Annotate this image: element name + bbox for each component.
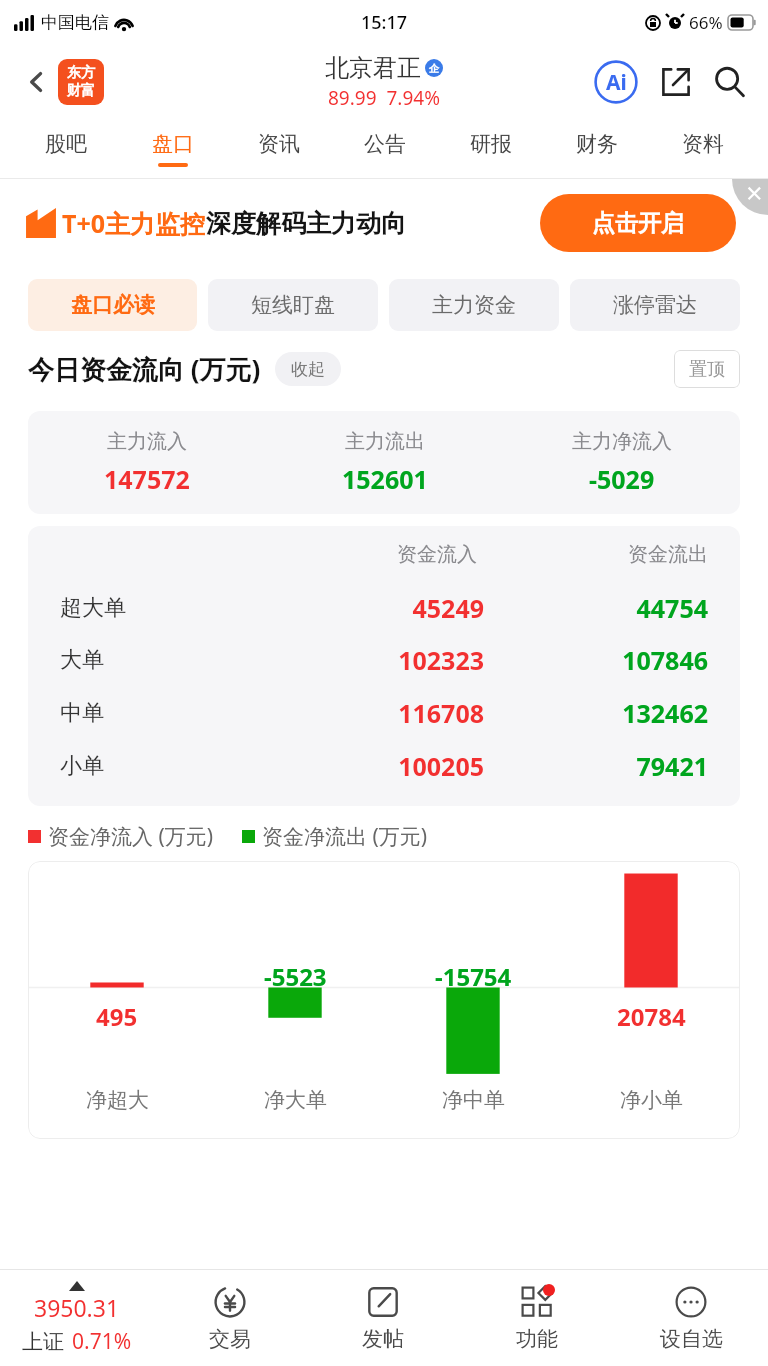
staticText: 净小单 [620,1087,683,1113]
staticText: 主力流出 [345,429,425,454]
button[interactable]: 涨停雷达 [570,279,740,331]
staticText: 中单 [60,699,272,727]
button[interactable]: 点击开启 [540,194,736,252]
staticText: 20784 [617,1000,686,1033]
staticText: 涨停雷达 [613,292,697,318]
button[interactable]: 资料 [650,120,756,178]
staticText: 79421 [496,749,708,783]
staticText: 152601 [342,462,428,496]
staticText: 45249 [272,591,484,625]
staticText: 44754 [496,591,708,625]
button[interactable]: Share [654,60,698,104]
staticText: 3950.31 [34,1292,120,1323]
staticText: 设自选 [660,1326,723,1352]
button[interactable]: 股吧 [12,120,119,178]
staticText: 超大单 [60,594,272,622]
button[interactable]: 公告 [332,120,438,178]
staticText: 495 [96,1000,138,1033]
button[interactable]: 3950.31 [0,1270,153,1366]
button[interactable]: 主力资金 [389,279,559,331]
button[interactable]: 主力流入 [28,411,740,514]
staticText: 资讯 [258,131,300,157]
staticText: 主力流入 [107,429,187,454]
button[interactable]: 研报 [438,120,544,178]
staticText: 北京君正 [325,53,421,83]
staticText: 点击开启 [592,209,684,238]
staticText: 股吧 [45,131,87,157]
staticText: 大单 [60,646,272,674]
button[interactable]: 收起 [275,352,341,386]
staticText: 上证 [22,1329,64,1355]
staticText: 116708 [272,696,484,730]
staticText: 盘口必读 [71,292,155,318]
staticText: 短线盯盘 [251,292,335,318]
staticText: 100205 [272,749,484,783]
staticText: 研报 [470,131,512,157]
staticText: 89.99 7.94% [328,85,440,111]
staticText: 132462 [496,696,708,730]
staticText: -5029 [589,462,655,496]
staticText: 主力资金 [432,292,516,318]
button[interactable]: 置顶 [674,350,740,388]
button[interactable]: Back [18,63,56,101]
staticText: 资金流入 [258,542,477,567]
button[interactable]: 盘口 [119,120,226,178]
staticText: 102323 [272,643,484,677]
staticText: 66% [689,11,723,34]
button[interactable]: 495 [28,861,740,1139]
staticText: 财富 [67,82,95,100]
button[interactable]: 设自选 [614,1270,768,1366]
staticText: 147572 [104,462,190,496]
staticText: 东方 [67,64,95,82]
staticText: 交易 [209,1326,251,1352]
staticText: 公告 [364,131,406,157]
staticText: 资料 [682,131,724,157]
button[interactable]: Search [708,60,752,104]
staticText: 资金净流出 (万元) [262,822,428,851]
staticText: 置顶 [689,358,725,381]
button[interactable]: East Money [58,59,104,105]
staticText: 0.71% [72,1327,132,1356]
staticText: -5523 [264,960,327,993]
staticText: 收起 [291,359,325,380]
staticText: 净超大 [86,1087,149,1113]
staticText: Ai [606,68,627,97]
staticText: 发帖 [362,1326,404,1352]
button[interactable]: AI [592,58,640,106]
staticText: 小单 [60,752,272,780]
staticText: 净中单 [442,1087,505,1113]
staticText: 中国电信 [41,12,109,33]
staticText: 功能 [516,1326,558,1352]
staticText: 15:17 [361,10,408,35]
staticText: 107846 [496,643,708,677]
staticText: 财务 [576,131,618,157]
button[interactable]: 发帖 [306,1270,460,1366]
button[interactable]: Close ad [732,179,768,215]
button[interactable]: 资金流入 [28,526,740,806]
staticText: 资金净流入 (万元) [48,822,214,851]
staticText: 主力净流入 [572,429,672,454]
staticText: 净大单 [264,1087,327,1113]
button[interactable]: 财务 [544,120,650,178]
staticText: T+0主力监控 [62,206,206,240]
button[interactable]: 功能 [460,1270,614,1366]
staticText: 深度解码主力动向 [206,208,406,239]
button[interactable]: 资讯 [226,120,332,178]
button[interactable]: 盘口必读 [28,279,197,331]
staticText: -15754 [435,960,512,993]
staticText: 盘口 [152,131,194,157]
button[interactable]: 交易 [153,1270,306,1366]
button[interactable]: 短线盯盘 [208,279,378,331]
staticText: 今日资金流向 (万元) [28,351,261,387]
staticText: 企 [429,62,439,75]
staticText: 资金流出 [489,542,708,567]
